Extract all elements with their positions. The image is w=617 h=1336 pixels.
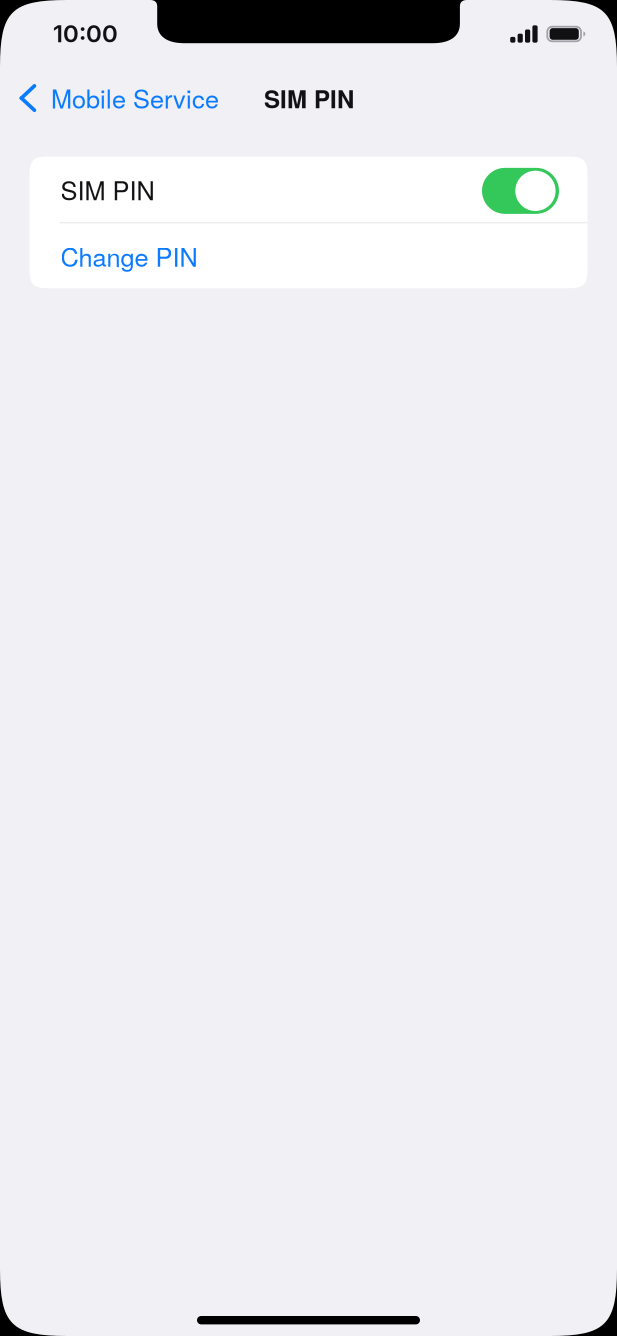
- staticText: SIM PIN: [264, 81, 354, 116]
- button[interactable]: Change PIN: [29, 223, 587, 288]
- button[interactable]: Mobile Service: [0, 67, 231, 125]
- button[interactable]: SIM PIN: [482, 165, 559, 214]
- staticText: 10:00: [53, 19, 118, 48]
- staticText: Change PIN: [60, 238, 197, 274]
- staticText: SIM PIN: [60, 171, 154, 207]
- staticText: Mobile Service: [51, 79, 219, 116]
